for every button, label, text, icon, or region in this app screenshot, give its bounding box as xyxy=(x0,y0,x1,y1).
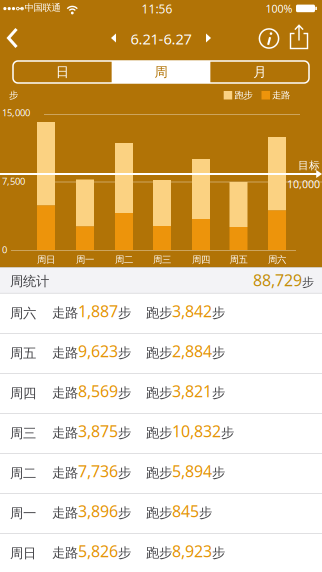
staticText: 步 xyxy=(212,545,225,561)
button[interactable] xyxy=(198,28,218,48)
staticText: 步 xyxy=(118,385,131,401)
staticText: 5,894 xyxy=(172,460,212,482)
staticText: 周六 xyxy=(268,254,286,265)
staticText: 0 xyxy=(2,243,7,256)
staticText: 目标 xyxy=(298,159,320,172)
staticText: 1,887 xyxy=(78,300,118,322)
staticText: 2,884 xyxy=(172,340,212,362)
staticText: 5,826 xyxy=(78,540,118,562)
staticText: 步 xyxy=(9,89,18,101)
staticText: 周 xyxy=(154,64,167,80)
staticText: 周四 xyxy=(192,254,210,265)
staticText: 周六 xyxy=(10,305,36,321)
staticText: 100% xyxy=(265,1,292,16)
staticText: 跑步 xyxy=(146,385,172,401)
button[interactable]: 周 xyxy=(112,61,210,83)
staticText: 10,832 xyxy=(172,420,221,442)
staticText: 8,569 xyxy=(78,380,118,402)
staticText: 步 xyxy=(118,545,131,561)
staticText: 10,000 xyxy=(287,177,320,191)
staticText: 周一 xyxy=(10,505,36,521)
staticText: 步 xyxy=(118,305,131,321)
staticText: 走路 xyxy=(52,465,78,481)
staticText: 日 xyxy=(56,64,69,80)
staticText: 88,729 xyxy=(253,269,302,291)
staticText: 走路 xyxy=(272,89,290,101)
staticText: 周四 xyxy=(10,385,36,401)
staticText: 周三 xyxy=(153,254,171,265)
staticText: 走路 xyxy=(52,505,78,521)
staticText: 3,875 xyxy=(78,420,118,442)
staticText: 跑步 xyxy=(146,345,172,361)
staticText: 步 xyxy=(118,505,131,521)
staticText: 中国联通 xyxy=(24,2,60,13)
staticText: 步 xyxy=(118,345,131,361)
staticText: 周二 xyxy=(10,465,36,481)
staticText: 周日 xyxy=(10,545,36,561)
button[interactable] xyxy=(284,21,314,51)
staticText: 步 xyxy=(118,465,131,481)
button[interactable] xyxy=(0,22,30,54)
staticText: 3,896 xyxy=(78,500,118,522)
staticText: 周二 xyxy=(115,254,133,265)
staticText: 8,923 xyxy=(172,540,212,562)
staticText: 周五 xyxy=(229,254,247,265)
staticText: 9,623 xyxy=(78,340,118,362)
staticText: 月 xyxy=(253,64,266,80)
staticText: 3,821 xyxy=(172,380,212,402)
staticText: 周五 xyxy=(10,345,36,361)
staticText: 7,736 xyxy=(78,460,118,482)
staticText: 步 xyxy=(302,275,314,290)
staticText: 周统计 xyxy=(10,273,49,289)
staticText: 跑步 xyxy=(146,465,172,481)
staticText: 步 xyxy=(212,305,225,321)
staticText: 走路 xyxy=(52,345,78,361)
staticText: 6.21-6.27 xyxy=(130,29,191,48)
staticText: 步 xyxy=(212,385,225,401)
staticText: 845 xyxy=(172,500,199,522)
staticText: 步 xyxy=(212,465,225,481)
button[interactable] xyxy=(253,23,284,54)
staticText: 跑步 xyxy=(146,425,172,441)
staticText: 走路 xyxy=(52,425,78,441)
staticText: 跑步 xyxy=(146,305,172,321)
staticText: 15,000 xyxy=(2,106,30,119)
staticText: 步 xyxy=(118,425,131,441)
staticText: 走路 xyxy=(52,305,78,321)
staticText: 走路 xyxy=(52,545,78,561)
staticText: 11:56 xyxy=(141,1,172,17)
staticText: 跑步 xyxy=(234,89,252,101)
staticText: 7,500 xyxy=(2,175,25,187)
staticText: 周日 xyxy=(37,254,55,265)
button[interactable]: 日 xyxy=(13,61,112,83)
staticText: 步 xyxy=(212,345,225,361)
staticText: 周三 xyxy=(10,425,36,441)
staticText: 3,842 xyxy=(172,300,212,322)
staticText: 周一 xyxy=(76,254,94,265)
staticText: 步 xyxy=(221,425,234,441)
staticText: 跑步 xyxy=(146,505,172,521)
staticText: 步 xyxy=(199,505,212,521)
staticText: 跑步 xyxy=(146,545,172,561)
button[interactable] xyxy=(103,28,123,48)
staticText: 走路 xyxy=(52,385,78,401)
button[interactable]: 月 xyxy=(210,61,309,83)
